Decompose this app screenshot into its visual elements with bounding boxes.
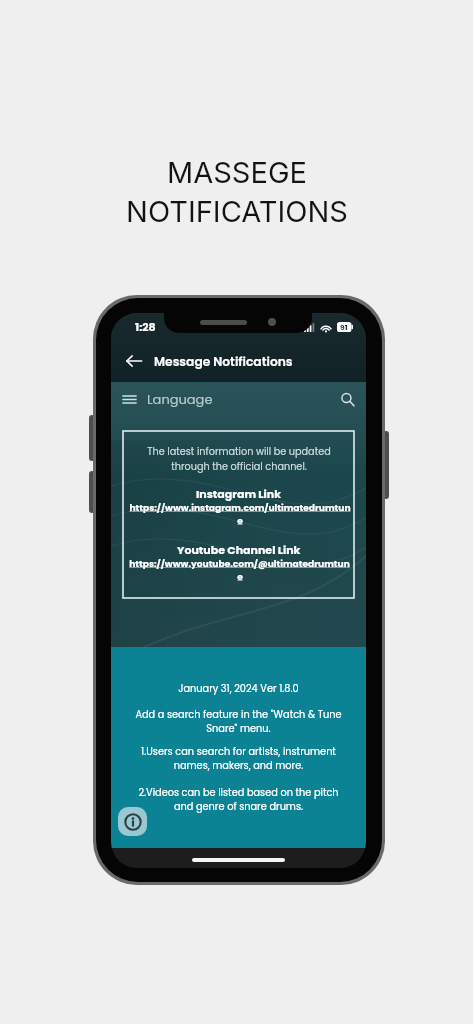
- staticText: Message Notifications: [154, 353, 293, 370]
- staticText: https://www.youtube.com/@ultimatedrumtun: [129, 557, 350, 570]
- staticText: Youtube Channel Link: [177, 542, 301, 557]
- staticText: e: [237, 570, 243, 583]
- button[interactable]: Info: [118, 807, 147, 836]
- staticText: 91: [340, 322, 348, 332]
- staticText: Instagram Link: [196, 486, 282, 501]
- button[interactable]: Search: [340, 392, 355, 407]
- staticText: 1:28: [135, 319, 156, 334]
- staticText: 1.Users can search for artists, instrume…: [141, 745, 336, 772]
- button[interactable]: Language: [147, 390, 213, 408]
- button[interactable]: Menu: [122, 392, 137, 407]
- staticText: MASSEGE: [167, 155, 307, 190]
- button[interactable]: Back: [125, 352, 143, 370]
- staticText: https://www.instagram.com/ultimatedrumtu…: [129, 501, 351, 514]
- staticText: NOTIFICATIONS: [126, 194, 348, 229]
- staticText: e: [237, 514, 243, 527]
- staticText: Add a search feature in the "Watch & Tun…: [135, 708, 342, 735]
- button[interactable]: https://www.instagram.com/ultimatedrumtu…: [125, 501, 354, 527]
- staticText: 2.Videos can be listed based on the pitc…: [138, 786, 339, 813]
- staticText: The latest information will be updated t…: [147, 445, 331, 473]
- staticText: January 31, 2024 Ver 1.8.0: [178, 682, 299, 696]
- button[interactable]: https://www.youtube.com/@ultimatedrumtun: [125, 557, 354, 583]
